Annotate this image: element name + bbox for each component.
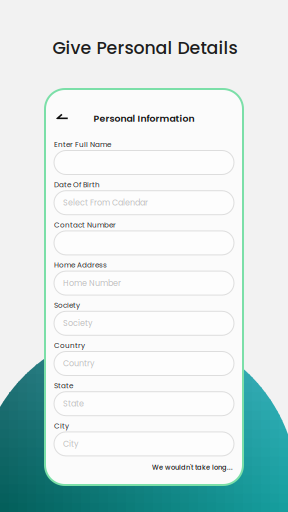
button[interactable]: Back — [50, 107, 74, 125]
staticText: Date Of Birth — [54, 180, 100, 190]
staticText: We wouldn't take long... — [152, 463, 233, 472]
button[interactable]: Home Address — [54, 261, 234, 295]
staticText: Society — [54, 300, 80, 310]
button[interactable]: Country — [54, 341, 234, 375]
staticText: Give Personal Details — [52, 36, 237, 60]
button[interactable]: Contact Number — [54, 221, 234, 255]
staticText: Enter Full Name — [54, 139, 111, 149]
button[interactable]: Enter Full Name — [54, 140, 234, 174]
staticText: Home Address — [54, 260, 107, 270]
staticText: Home Number — [63, 277, 121, 289]
staticText: Country — [63, 358, 95, 369]
staticText: Contact Number — [54, 220, 116, 230]
button[interactable]: State — [54, 382, 234, 416]
staticText: State — [63, 398, 84, 409]
staticText: Country — [54, 340, 85, 350]
staticText: City — [54, 421, 69, 431]
staticText: City — [63, 438, 79, 449]
button[interactable]: Date Of Birth — [54, 181, 234, 215]
staticText: Select From Calendar — [63, 197, 148, 208]
button[interactable]: City — [54, 422, 234, 456]
staticText: State — [54, 381, 73, 391]
staticText: Personal Information — [93, 112, 194, 125]
button[interactable]: Society — [54, 301, 234, 335]
staticText: Society — [63, 318, 93, 329]
